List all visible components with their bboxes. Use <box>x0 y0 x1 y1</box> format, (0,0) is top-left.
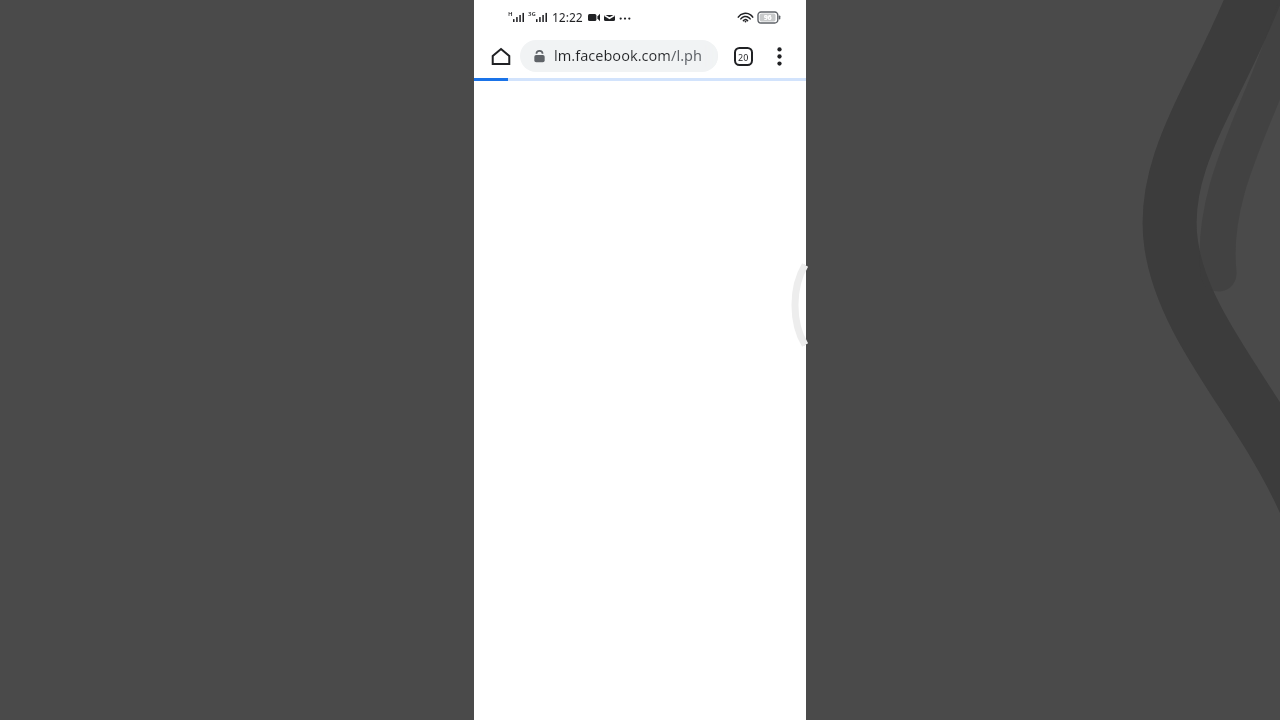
button[interactable]: Tabs, 20 open <box>726 39 760 73</box>
staticText: 20 <box>738 51 749 63</box>
staticText: lm.facebook.com <box>554 45 671 65</box>
staticText: /l.ph <box>671 45 702 65</box>
staticText: H <box>508 10 513 18</box>
button[interactable]: lm.facebook.com <box>520 40 718 72</box>
staticText: 96 <box>764 13 772 22</box>
staticText: 3G <box>528 10 536 18</box>
staticText: 12:22 <box>552 9 583 25</box>
button[interactable]: More options <box>762 39 796 73</box>
button[interactable]: Home <box>484 39 518 73</box>
